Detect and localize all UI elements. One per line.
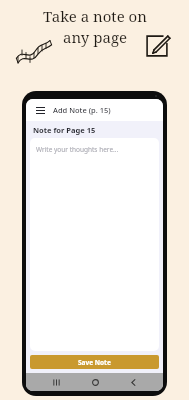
button[interactable]: Write your thoughts here... [30, 138, 159, 351]
staticText: Save Note [78, 358, 111, 367]
staticText: Take a note on [43, 6, 147, 26]
staticText: Add Note (p. 15) [53, 105, 111, 115]
button[interactable]: Edit note [142, 31, 172, 61]
button[interactable]: Save Note [30, 355, 159, 369]
staticText: Write your thoughts here... [36, 145, 119, 154]
button[interactable]: Back [125, 374, 141, 390]
button[interactable]: Recent apps [48, 374, 64, 390]
button[interactable]: Open menu [33, 103, 47, 117]
staticText: Note for Page 15 [33, 125, 96, 135]
button[interactable]: Home [87, 374, 103, 390]
staticText: any page [63, 27, 127, 47]
